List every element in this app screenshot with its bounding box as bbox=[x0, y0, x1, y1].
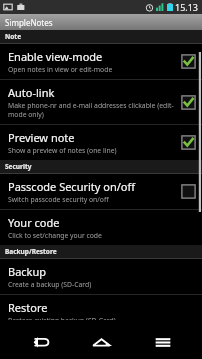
staticText: Switch passcode security on/off bbox=[8, 195, 109, 204]
button[interactable]: Passcode Security on/off bbox=[0, 174, 202, 209]
button[interactable]: Checked bbox=[181, 135, 196, 150]
staticText: Security bbox=[5, 162, 32, 171]
staticText: SimpleNotes bbox=[5, 17, 53, 28]
staticText: Click to set/change your code bbox=[8, 231, 102, 240]
staticText: Restore bbox=[8, 300, 48, 315]
staticText: Auto-link bbox=[8, 85, 55, 100]
button[interactable]: Menu bbox=[141, 325, 185, 359]
staticText: Create a backup (SD-Card) bbox=[8, 280, 92, 289]
button[interactable]: Checked bbox=[181, 54, 196, 69]
button[interactable]: Restore bbox=[0, 295, 202, 325]
button[interactable]: Enable view-mode bbox=[0, 44, 202, 79]
button[interactable]: Unchecked bbox=[181, 184, 196, 199]
staticText: Restore existing backup (SD-Card) bbox=[8, 316, 116, 320]
button[interactable]: Preview note bbox=[0, 125, 202, 160]
button[interactable]: Back bbox=[18, 325, 62, 359]
staticText: Your code bbox=[8, 215, 60, 230]
staticText: Backup bbox=[8, 264, 47, 279]
staticText: Enable view-mode bbox=[8, 49, 103, 64]
staticText: Note bbox=[5, 32, 22, 41]
button[interactable]: Backup bbox=[0, 259, 202, 294]
staticText: Open notes in view or edit-mode bbox=[8, 65, 113, 74]
staticText: Backup/Restore bbox=[5, 247, 57, 256]
button[interactable]: Home bbox=[79, 325, 123, 359]
staticText: Make phone-nr and e-mail addresses click… bbox=[8, 101, 177, 119]
button[interactable]: Auto-link bbox=[0, 80, 202, 124]
staticText: 15.13 bbox=[175, 1, 199, 13]
staticText: Passcode Security on/off bbox=[8, 179, 136, 194]
button[interactable]: Your code bbox=[0, 210, 202, 245]
button[interactable]: Checked bbox=[181, 95, 196, 110]
staticText: Show a preview of notes (one line) bbox=[8, 146, 117, 155]
staticText: Preview note bbox=[8, 130, 75, 145]
